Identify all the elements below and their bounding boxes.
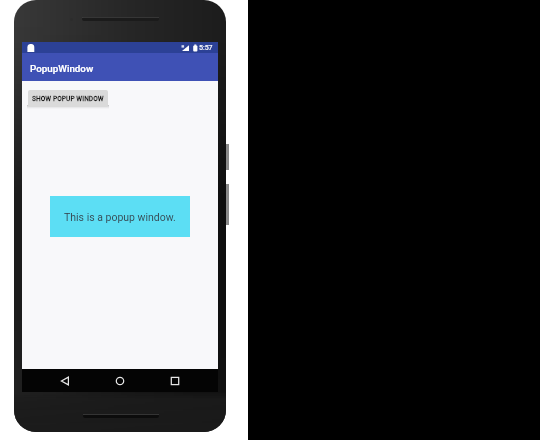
button[interactable]: Home — [108, 369, 132, 392]
button[interactable]: SHOW POPUP WINDOW — [28, 90, 108, 107]
staticText: This is a popup window. — [64, 211, 176, 223]
staticText: 5:57 — [199, 44, 213, 52]
button[interactable]: Back — [53, 369, 77, 392]
staticText: SHOW POPUP WINDOW — [32, 95, 104, 103]
button[interactable]: Recent apps — [163, 369, 187, 392]
staticText: PopupWindow — [30, 63, 94, 74]
button[interactable]: This is a popup window. — [50, 196, 190, 237]
